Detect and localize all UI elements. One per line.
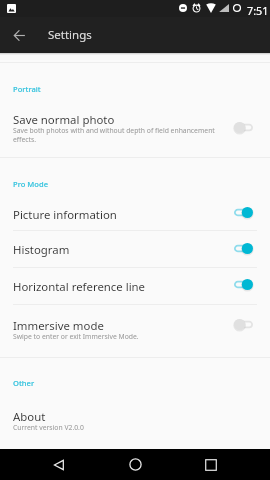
button[interactable]: Home bbox=[120, 449, 151, 480]
staticText: Histogram bbox=[13, 242, 70, 258]
button[interactable] bbox=[0, 268, 270, 304]
staticText: Portrait bbox=[13, 84, 41, 94]
button[interactable]: Back bbox=[1, 17, 37, 53]
staticText: Horizontal reference line bbox=[13, 279, 146, 295]
staticText: Save normal photo bbox=[13, 112, 115, 128]
staticText: Pro Mode bbox=[13, 179, 48, 189]
button[interactable] bbox=[0, 232, 270, 267]
button[interactable]: Back bbox=[43, 449, 74, 480]
staticText: 7:51 bbox=[247, 3, 269, 18]
staticText: Picture information bbox=[13, 207, 117, 223]
button[interactable] bbox=[0, 196, 270, 231]
staticText: Settings bbox=[48, 27, 92, 43]
button[interactable] bbox=[0, 305, 270, 356]
staticText: Save both photos with and without depth … bbox=[13, 126, 228, 144]
staticText: Swipe to enter or exit Immersive Mode. bbox=[13, 332, 228, 341]
button[interactable] bbox=[0, 400, 270, 444]
staticText: Other bbox=[13, 378, 35, 388]
button[interactable] bbox=[0, 102, 270, 155]
staticText: Current version V2.0.0 bbox=[13, 423, 228, 432]
staticText: About bbox=[13, 409, 46, 425]
button[interactable]: Recents bbox=[195, 449, 226, 480]
button[interactable] bbox=[0, 64, 270, 93]
staticText: Immersive mode bbox=[13, 318, 104, 334]
